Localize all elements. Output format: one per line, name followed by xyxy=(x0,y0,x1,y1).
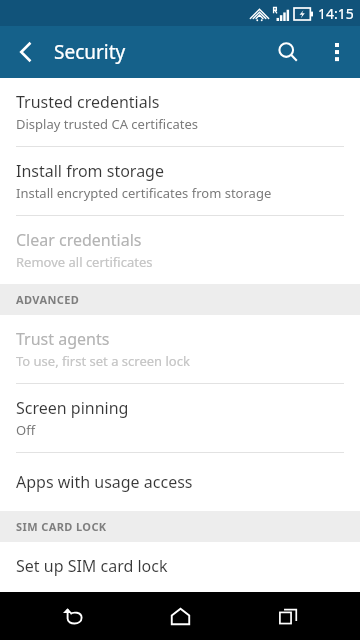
staticText: SIM CARD LOCK xyxy=(16,519,107,534)
staticText: Off xyxy=(16,421,36,439)
staticText: Screen pinning xyxy=(16,397,129,419)
button[interactable]: Search xyxy=(262,26,314,78)
staticText: Trust agents xyxy=(16,328,110,350)
staticText: Clear credentials xyxy=(16,229,142,251)
staticText: Install encrypted certificates from stor… xyxy=(16,184,272,202)
button[interactable]: Apps with usage access xyxy=(0,453,360,511)
button[interactable]: More options xyxy=(314,29,360,75)
button[interactable]: Trusted credentials xyxy=(0,78,360,146)
staticText: Remove all certificates xyxy=(16,253,153,271)
staticText: ADVANCED xyxy=(16,292,80,307)
staticText: Set up SIM card lock xyxy=(16,555,168,577)
button[interactable]: Back xyxy=(36,592,108,640)
button[interactable]: Back xyxy=(0,26,52,78)
staticText: Install from storage xyxy=(16,160,164,182)
button[interactable]: Home xyxy=(144,592,216,640)
button[interactable]: Trust agents xyxy=(0,315,360,383)
button[interactable]: Clear credentials xyxy=(0,216,360,284)
staticText: Display trusted CA certificates xyxy=(16,115,198,133)
button[interactable]: Install from storage xyxy=(0,147,360,215)
staticText: Trusted credentials xyxy=(16,91,160,113)
button[interactable]: Recent apps xyxy=(252,592,324,640)
button[interactable]: Set up SIM card lock xyxy=(0,542,360,592)
staticText: 14:15 xyxy=(318,4,354,23)
staticText: Apps with usage access xyxy=(16,471,193,493)
staticText: Security xyxy=(54,39,126,65)
button[interactable]: Screen pinning xyxy=(0,384,360,452)
staticText: To use, first set a screen lock xyxy=(16,352,190,370)
